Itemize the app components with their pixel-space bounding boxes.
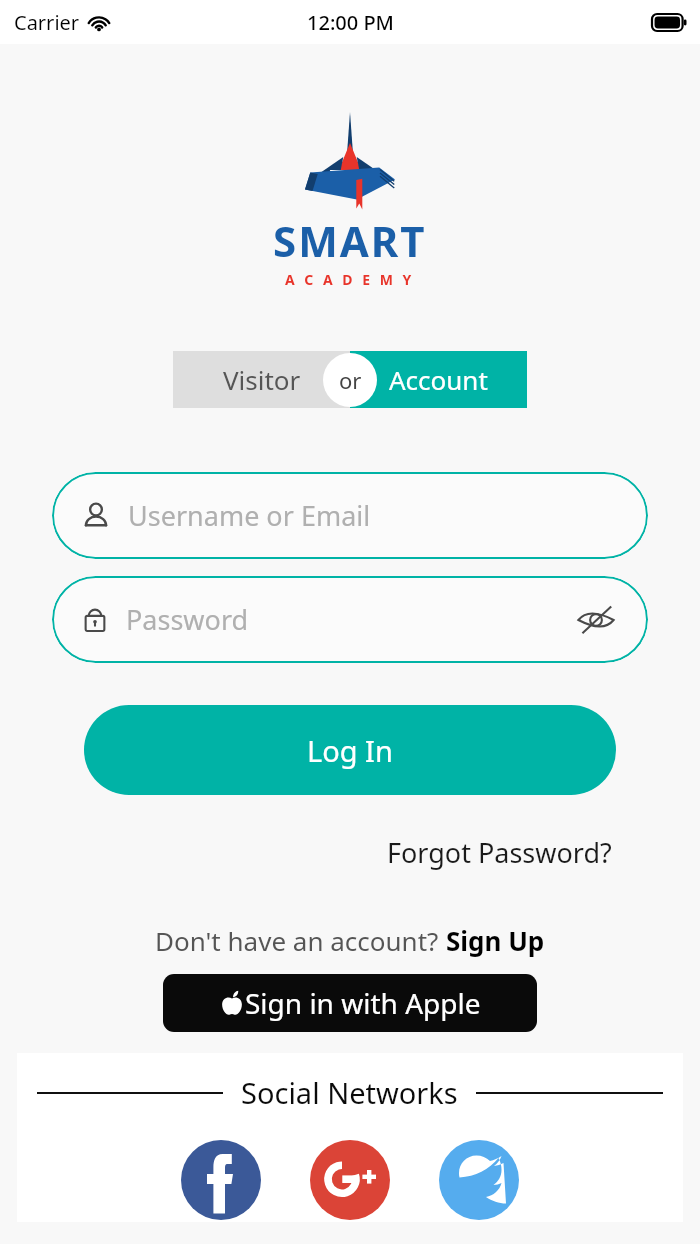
staticText: 12:00 PM [307,9,394,36]
button[interactable]: Forgot Password? [383,830,616,875]
button[interactable]: Log In [84,705,616,795]
button[interactable]: Show password [574,598,618,642]
staticText: Sign Up [446,923,545,958]
button[interactable]: Visitor [173,351,350,408]
staticText: Visitor [223,362,301,397]
button[interactable]: Sign in with Apple [163,974,537,1032]
staticText: Username or Email [128,497,371,534]
staticText: Don't have an account? [155,923,446,958]
staticText: Sign in with Apple [245,984,481,1022]
staticText: SMART [273,212,427,269]
button[interactable]: Username or Email [52,472,648,559]
button[interactable]: Sign Up [446,923,545,958]
button[interactable]: Facebook [181,1140,261,1220]
staticText: Log In [307,731,393,770]
staticText: Social Networks [241,1073,458,1112]
staticText: Carrier [14,9,80,36]
staticText: Password [126,601,249,638]
button[interactable]: Google Plus [310,1140,390,1220]
staticText: A C A D E M Y [285,270,415,289]
staticText: or [339,365,362,395]
button[interactable]: Account [350,351,527,408]
button[interactable]: Password [52,576,648,663]
button[interactable]: Twitter [439,1140,519,1220]
staticText: Forgot Password? [387,834,612,871]
staticText: Account [389,362,488,397]
